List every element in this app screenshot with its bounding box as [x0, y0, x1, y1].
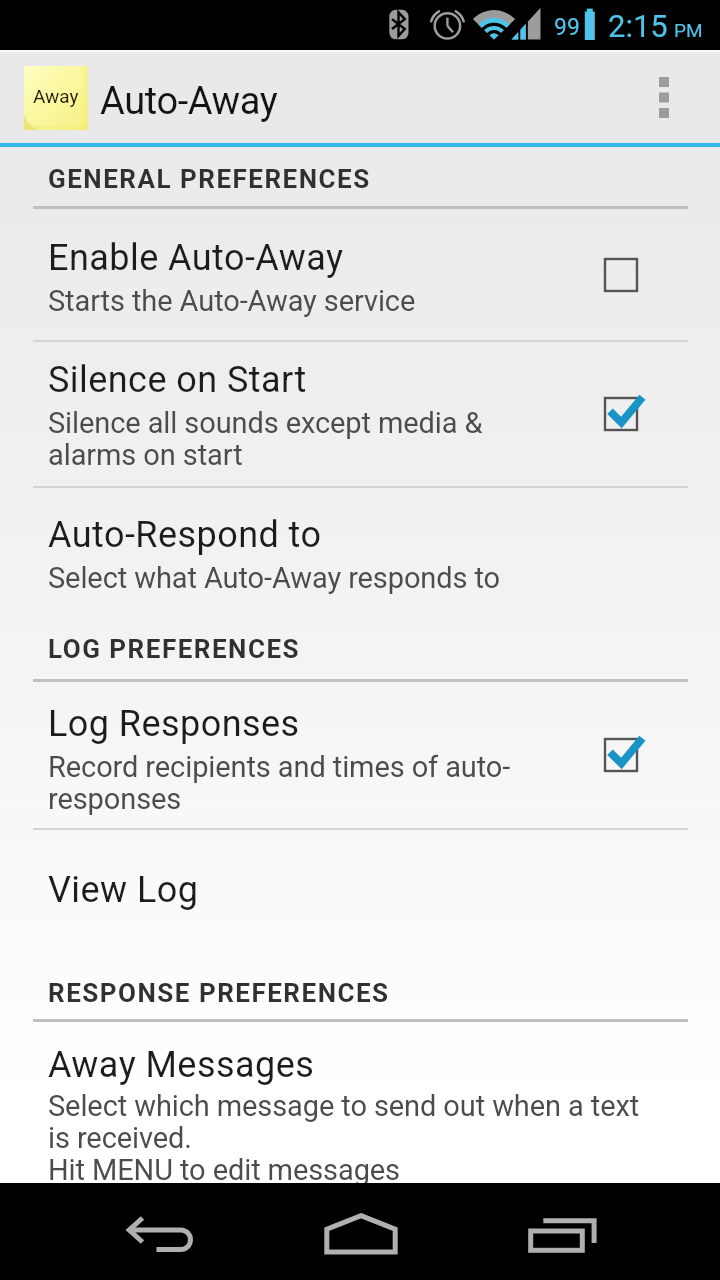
staticText: RESPONSE PREFERENCES — [48, 978, 390, 1008]
staticText: Record recipients and times of auto- res… — [48, 750, 511, 816]
staticText: Silence on Start — [48, 359, 307, 401]
button[interactable]: Home — [260, 1186, 460, 1280]
button[interactable]: Recent apps — [460, 1186, 660, 1280]
staticText: 99 — [554, 14, 580, 41]
staticText: Silence all sounds except media & alarms… — [48, 406, 483, 472]
button[interactable]: Auto-Respond to — [0, 488, 720, 619]
staticText: Auto-Away — [100, 79, 278, 124]
button[interactable]: More options — [608, 52, 720, 143]
staticText: Enable Auto-Away — [48, 237, 344, 279]
staticText: GENERAL PREFERENCES — [48, 164, 371, 194]
staticText: Select what Auto-Away responds to — [48, 561, 501, 595]
button[interactable]: Toggle Log Responses — [571, 682, 671, 828]
staticText: 2:15 — [608, 8, 668, 44]
staticText: Away — [33, 85, 79, 107]
button[interactable]: Away Messages — [0, 1022, 720, 1183]
staticText: Away Messages — [48, 1044, 315, 1086]
staticText: Select which message to send out when a … — [48, 1089, 640, 1183]
staticText: Starts the Auto-Away service — [48, 284, 416, 318]
button[interactable]: Silence on Start — [0, 342, 720, 486]
button[interactable]: Log Responses — [0, 682, 720, 828]
button[interactable]: Back — [60, 1186, 260, 1280]
staticText: PM — [674, 19, 703, 41]
staticText: LOG PREFERENCES — [48, 634, 301, 664]
staticText: Log Responses — [48, 703, 300, 745]
button[interactable]: Enable Auto-Away — [0, 209, 720, 340]
button[interactable]: Toggle Silence on Start — [571, 342, 671, 486]
button[interactable]: View Log — [0, 830, 720, 958]
staticText: Auto-Respond to — [48, 514, 322, 556]
button[interactable]: Toggle Enable Auto-Away — [571, 209, 671, 340]
staticText: View Log — [48, 869, 199, 911]
